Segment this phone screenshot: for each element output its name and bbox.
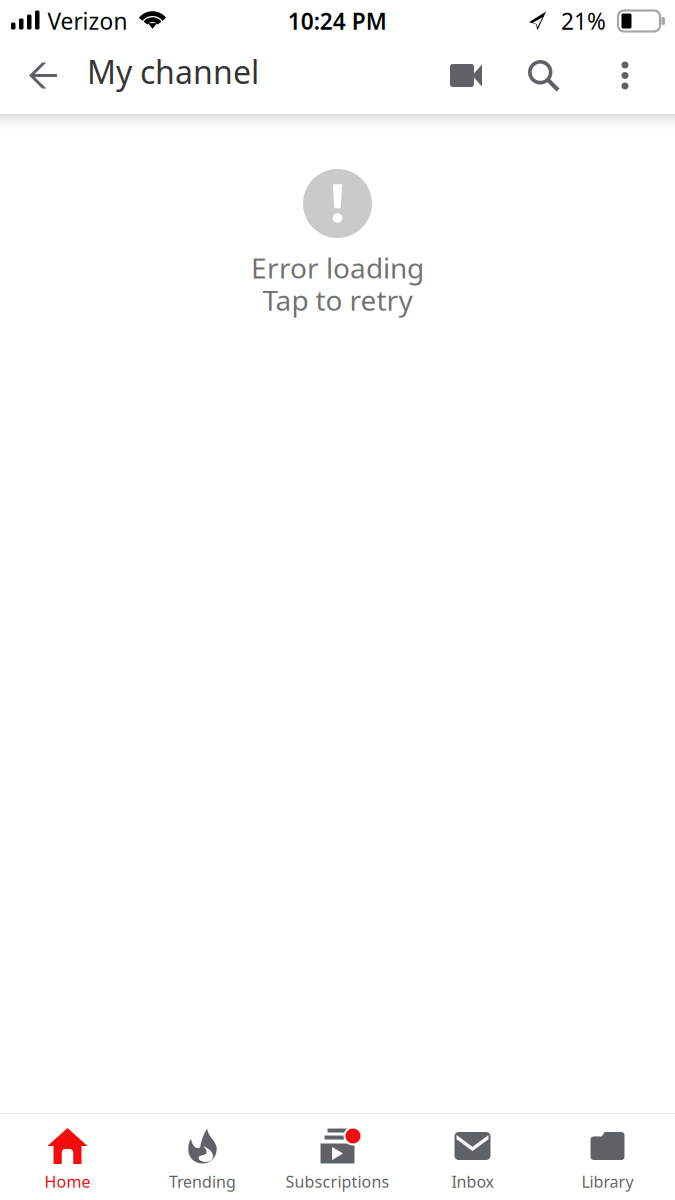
staticText: Library [581, 1171, 633, 1192]
button[interactable]: Inbox [405, 1114, 540, 1200]
button[interactable]: Library [540, 1114, 675, 1200]
staticText: Home [44, 1171, 90, 1192]
button[interactable]: Trending [135, 1114, 270, 1200]
staticText: 21% [561, 6, 606, 36]
button[interactable]: Create video [423, 42, 502, 114]
staticText: Error loading [251, 249, 424, 286]
staticText: Verizon [47, 6, 127, 36]
button[interactable]: More options [587, 42, 675, 114]
staticText: Subscriptions [285, 1171, 389, 1192]
staticText: Tap to retry [262, 281, 412, 318]
staticText: My channel [87, 50, 259, 93]
button[interactable]: Subscriptions [270, 1114, 405, 1200]
button[interactable]: Back [0, 42, 87, 114]
staticText: Inbox [451, 1171, 493, 1192]
staticText: Trending [169, 1171, 236, 1192]
button[interactable]: Search [502, 42, 587, 114]
staticText: 10:24 PM [288, 6, 387, 36]
button[interactable]: Home [0, 1114, 135, 1200]
